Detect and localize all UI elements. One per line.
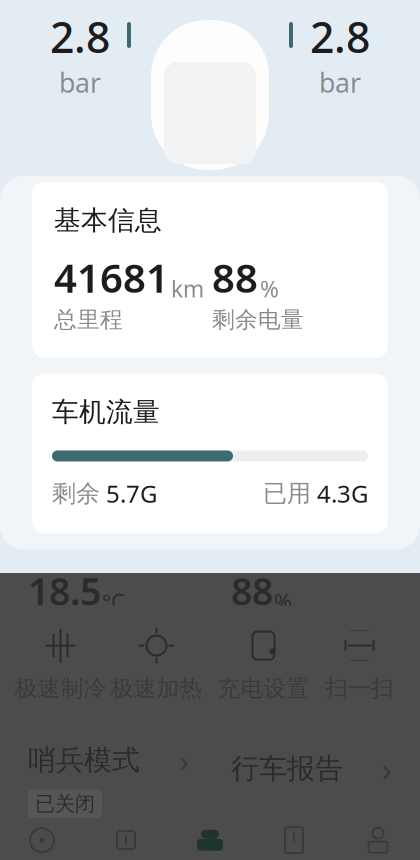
staticText: 基本信息 <box>54 204 162 237</box>
button[interactable]: 充电 <box>215 527 408 601</box>
staticText: › <box>382 517 392 560</box>
button[interactable]: 哨兵模式 <box>12 733 205 817</box>
staticText: 88 <box>212 251 258 304</box>
button[interactable]: 充电设置 <box>215 609 311 719</box>
staticText: 极速制冷 <box>14 675 106 702</box>
staticText: 已关闭 <box>35 791 95 816</box>
button[interactable]: 空调 <box>12 527 205 601</box>
button[interactable]: 岚图 <box>168 825 252 860</box>
staticText: › <box>179 739 189 781</box>
staticText: % <box>260 274 279 304</box>
button[interactable]: 扫一扫 <box>311 609 407 719</box>
button[interactable]: 服务 <box>84 825 168 860</box>
button[interactable]: 极速制冷 <box>12 609 108 719</box>
staticText: 扫一扫 <box>325 675 394 702</box>
staticText: 88 <box>231 566 273 616</box>
staticText: 剩余电量 <box>212 306 304 334</box>
button[interactable]: 我的 <box>336 825 420 860</box>
staticText: °C <box>102 587 124 615</box>
staticText: › <box>382 747 392 790</box>
staticText: bar <box>319 498 361 533</box>
staticText: 充电 <box>231 521 287 556</box>
staticText: 41681 <box>54 251 169 304</box>
staticText: 2.8 <box>50 441 110 498</box>
staticText: bar <box>59 65 101 100</box>
staticText: 剩余 <box>52 479 100 508</box>
staticText: 总里程 <box>54 306 123 334</box>
button[interactable]: 车机流量 <box>32 374 388 533</box>
staticText: km <box>171 274 204 304</box>
staticText: 空调 <box>28 521 84 556</box>
staticText: 2.8 <box>50 8 110 65</box>
staticText: bar <box>59 498 101 533</box>
staticText: 行车报告 <box>231 752 343 786</box>
button[interactable]: 极速加热 <box>108 609 204 719</box>
staticText: % <box>274 587 292 615</box>
button[interactable]: 基本信息 <box>32 182 388 358</box>
staticText: 2.8 <box>310 441 370 498</box>
staticText: 已用 <box>263 479 311 508</box>
button[interactable]: 商城 <box>252 825 336 860</box>
staticText: 4.3G <box>317 477 368 509</box>
staticText: 5.7G <box>106 477 157 509</box>
staticText: › <box>179 517 189 560</box>
staticText: 2.8 <box>310 8 370 65</box>
staticText: bar <box>319 65 361 100</box>
button[interactable]: 行车报告 <box>215 733 408 817</box>
staticText: 极速加热 <box>110 675 202 702</box>
staticText: 哨兵模式 <box>28 743 140 777</box>
staticText: 车机流量 <box>52 396 160 428</box>
staticText: 充电设置 <box>217 675 309 702</box>
staticText: 18.5 <box>28 566 101 616</box>
button[interactable]: 发现 <box>0 825 84 860</box>
